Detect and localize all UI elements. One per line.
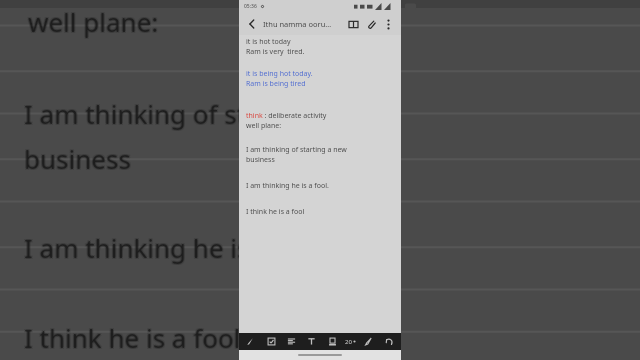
staticText: 20: [345, 338, 352, 346]
button[interactable]: Pen: [242, 333, 259, 350]
staticText: I am thinking of starting a new: [25, 95, 400, 130]
staticText: business: [246, 155, 275, 165]
staticText: business: [24, 141, 131, 176]
staticText: I think he is a fool: [23, 319, 240, 354]
button[interactable]: Paragraph: [283, 333, 300, 350]
button[interactable]: Attach: [362, 15, 380, 33]
staticText: business: [23, 140, 130, 175]
staticText: business: [23, 142, 130, 177]
button[interactable]: View mode: [344, 15, 362, 33]
button[interactable]: More options: [380, 16, 396, 32]
staticText: I think he is a fool: [23, 321, 240, 356]
button[interactable]: Highlight: [324, 333, 341, 350]
staticText: I am thinking he is a fool.: [25, 231, 333, 266]
staticText: I am thinking of starting a new: [23, 95, 398, 130]
staticText: I am thinking he is a fool.: [24, 230, 332, 265]
staticText: well plane:: [27, 3, 158, 38]
staticText: I am thinking of starting a new: [23, 97, 398, 132]
staticText: business: [25, 142, 132, 177]
staticText: it is hot today: [246, 37, 291, 47]
button[interactable]: Undo: [381, 333, 398, 350]
staticText: well plane:: [29, 3, 160, 38]
staticText: I am thinking of starting a new: [24, 96, 399, 131]
staticText: I am thinking he is a fool.: [246, 181, 329, 191]
staticText: well plane:: [27, 5, 158, 40]
staticText: Ithu namma ooru…: [263, 19, 344, 29]
staticText: Ram is very tired.: [246, 47, 305, 57]
button[interactable]: Text style: [303, 333, 320, 350]
staticText: I am thinking he is a fool.: [23, 229, 331, 264]
staticText: well plane:: [29, 5, 160, 40]
staticText: I think he is a fool: [246, 207, 305, 217]
staticText: it is being hot today.: [246, 69, 313, 79]
button[interactable]: 20: [344, 333, 357, 350]
staticText: I am thinking he is a fool.: [23, 231, 331, 266]
button[interactable]: Marker: [360, 333, 377, 350]
staticText: I am thinking he is a fool.: [25, 229, 333, 264]
staticText: I think he is a fool: [24, 320, 241, 355]
staticText: Ram is being tired: [246, 79, 306, 89]
button[interactable]: Back: [244, 16, 260, 32]
staticText: well plane:: [28, 4, 159, 39]
staticText: I think he is a fool: [25, 321, 242, 356]
staticText: think : deliberate activity: [246, 111, 327, 121]
button[interactable]: Checklist: [263, 333, 280, 350]
staticText: well plane:: [246, 121, 282, 131]
staticText: I am thinking of starting a new: [246, 145, 347, 155]
staticText: I think he is a fool: [25, 319, 242, 354]
staticText: business: [25, 140, 132, 175]
staticText: I am thinking of starting a new: [25, 97, 400, 132]
staticText: 05:36: [244, 3, 257, 10]
